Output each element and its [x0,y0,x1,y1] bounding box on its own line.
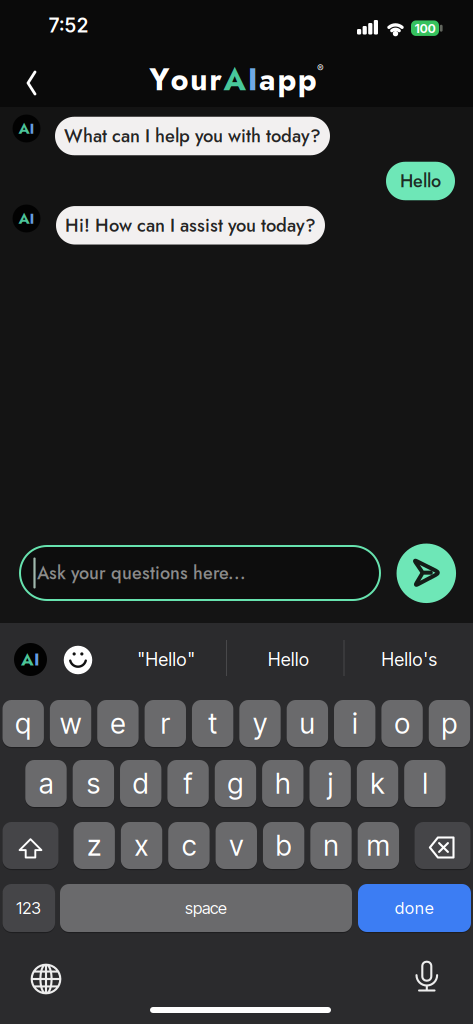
staticText: s [87,767,100,800]
staticText: 123 [16,898,41,918]
staticText: A [223,57,246,102]
button[interactable]: Delete [414,822,470,869]
staticText: ® [317,62,324,75]
button[interactable]: b [263,822,304,869]
staticText: p [277,57,296,102]
staticText: d [133,767,149,800]
staticText: i [352,707,357,740]
button[interactable]: g [215,760,256,807]
button[interactable]: y [239,700,281,747]
button[interactable]: n [310,822,352,869]
button[interactable]: r [145,700,186,747]
staticText: y [253,707,267,740]
staticText: q [15,707,31,740]
staticText: h [275,767,290,800]
staticText: j [328,767,333,800]
button[interactable]: s [73,760,114,807]
staticText: f [184,767,193,800]
staticText: Hello's [381,649,438,670]
button[interactable]: space [60,884,352,932]
staticText: u [190,57,208,102]
button[interactable]: l [404,760,446,807]
staticText: n [323,829,338,862]
button[interactable]: z [73,822,115,869]
staticText: I [248,57,258,102]
staticText: l [422,767,427,800]
button[interactable]: Emoji [64,646,92,674]
staticText: p [441,707,457,740]
button[interactable]: 123 [3,884,55,932]
button[interactable]: v [216,822,257,869]
staticText: A [21,647,34,672]
button[interactable]: done [358,884,471,932]
staticText: Hello [267,649,309,670]
button[interactable]: Dictate [414,960,440,994]
staticText: space [185,898,227,918]
staticText: u [300,707,315,740]
staticText: I [29,117,34,140]
staticText: A [18,207,29,230]
staticText: w [60,707,81,740]
button[interactable]: Shift [2,822,58,869]
staticText: x [135,829,149,862]
button[interactable]: h [262,760,303,807]
staticText: e [110,707,125,740]
staticText: k [370,767,384,800]
button[interactable]: Ask your questions here [19,545,381,601]
staticText: b [276,829,292,862]
staticText: v [229,829,243,862]
button[interactable]: Hello [233,636,343,682]
staticText: I [34,647,40,672]
staticText: p [298,57,317,102]
staticText: 7:52 [48,14,88,37]
staticText: A [18,117,29,140]
button[interactable]: u [287,700,328,747]
button[interactable]: Send [397,543,456,603]
button[interactable]: m [358,822,399,869]
staticText: r [209,57,222,102]
staticText: 100 [414,21,435,36]
button[interactable]: o [381,700,423,747]
staticText: done [394,898,434,918]
button[interactable]: k [357,760,398,807]
button[interactable]: a [25,760,67,807]
staticText: Ask your questions here... [37,560,246,586]
staticText: c [182,829,196,862]
staticText: o [395,707,410,740]
button[interactable]: Back [16,63,47,103]
staticText: r [161,707,170,740]
button[interactable]: d [120,760,161,807]
staticText: What can I help you with today? [64,123,321,149]
button[interactable]: q [2,700,44,747]
button[interactable]: "Hello" [111,636,221,682]
button[interactable]: f [167,760,209,807]
button[interactable]: i [334,700,375,747]
staticText: g [227,767,243,800]
button[interactable]: e [97,700,139,747]
staticText: z [87,829,101,862]
staticText: o [171,57,189,102]
staticText: Hello [400,168,441,194]
staticText: I [29,207,34,230]
staticText: m [367,829,390,862]
button[interactable]: Next keyboard [30,963,61,994]
button[interactable]: Hello's [354,636,464,682]
button[interactable]: p [429,700,470,747]
staticText: a [259,57,276,102]
button[interactable]: x [121,822,162,869]
button[interactable]: j [309,760,351,807]
button[interactable]: t [192,700,233,747]
button[interactable]: c [168,822,210,869]
staticText: Y [149,57,169,102]
staticText: "Hello" [137,649,195,670]
button[interactable]: w [50,700,91,747]
staticText: t [208,707,217,740]
staticText: a [39,767,53,800]
staticText: Hi! How can I assist you today? [65,212,316,238]
